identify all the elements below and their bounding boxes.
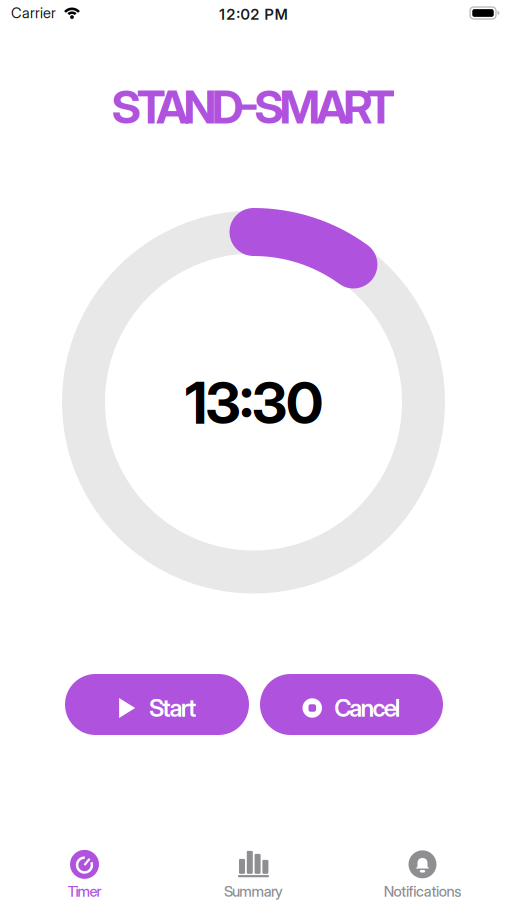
button[interactable]: Start (65, 674, 249, 735)
staticText: Timer (67, 883, 101, 900)
button[interactable]: Summary (169, 846, 338, 900)
button[interactable]: Cancel (260, 674, 443, 735)
staticText: 13:30 (185, 369, 323, 437)
button[interactable]: Notifications (338, 846, 507, 900)
staticText: Start (149, 694, 196, 722)
staticText: Notifications (384, 883, 461, 900)
button[interactable]: Timer (0, 846, 169, 900)
staticText: 12:02 PM (219, 6, 288, 23)
staticText: Summary (224, 883, 283, 900)
staticText: STAND-SMART (111, 80, 395, 134)
staticText: Carrier (11, 4, 56, 22)
staticText: Cancel (334, 694, 401, 722)
